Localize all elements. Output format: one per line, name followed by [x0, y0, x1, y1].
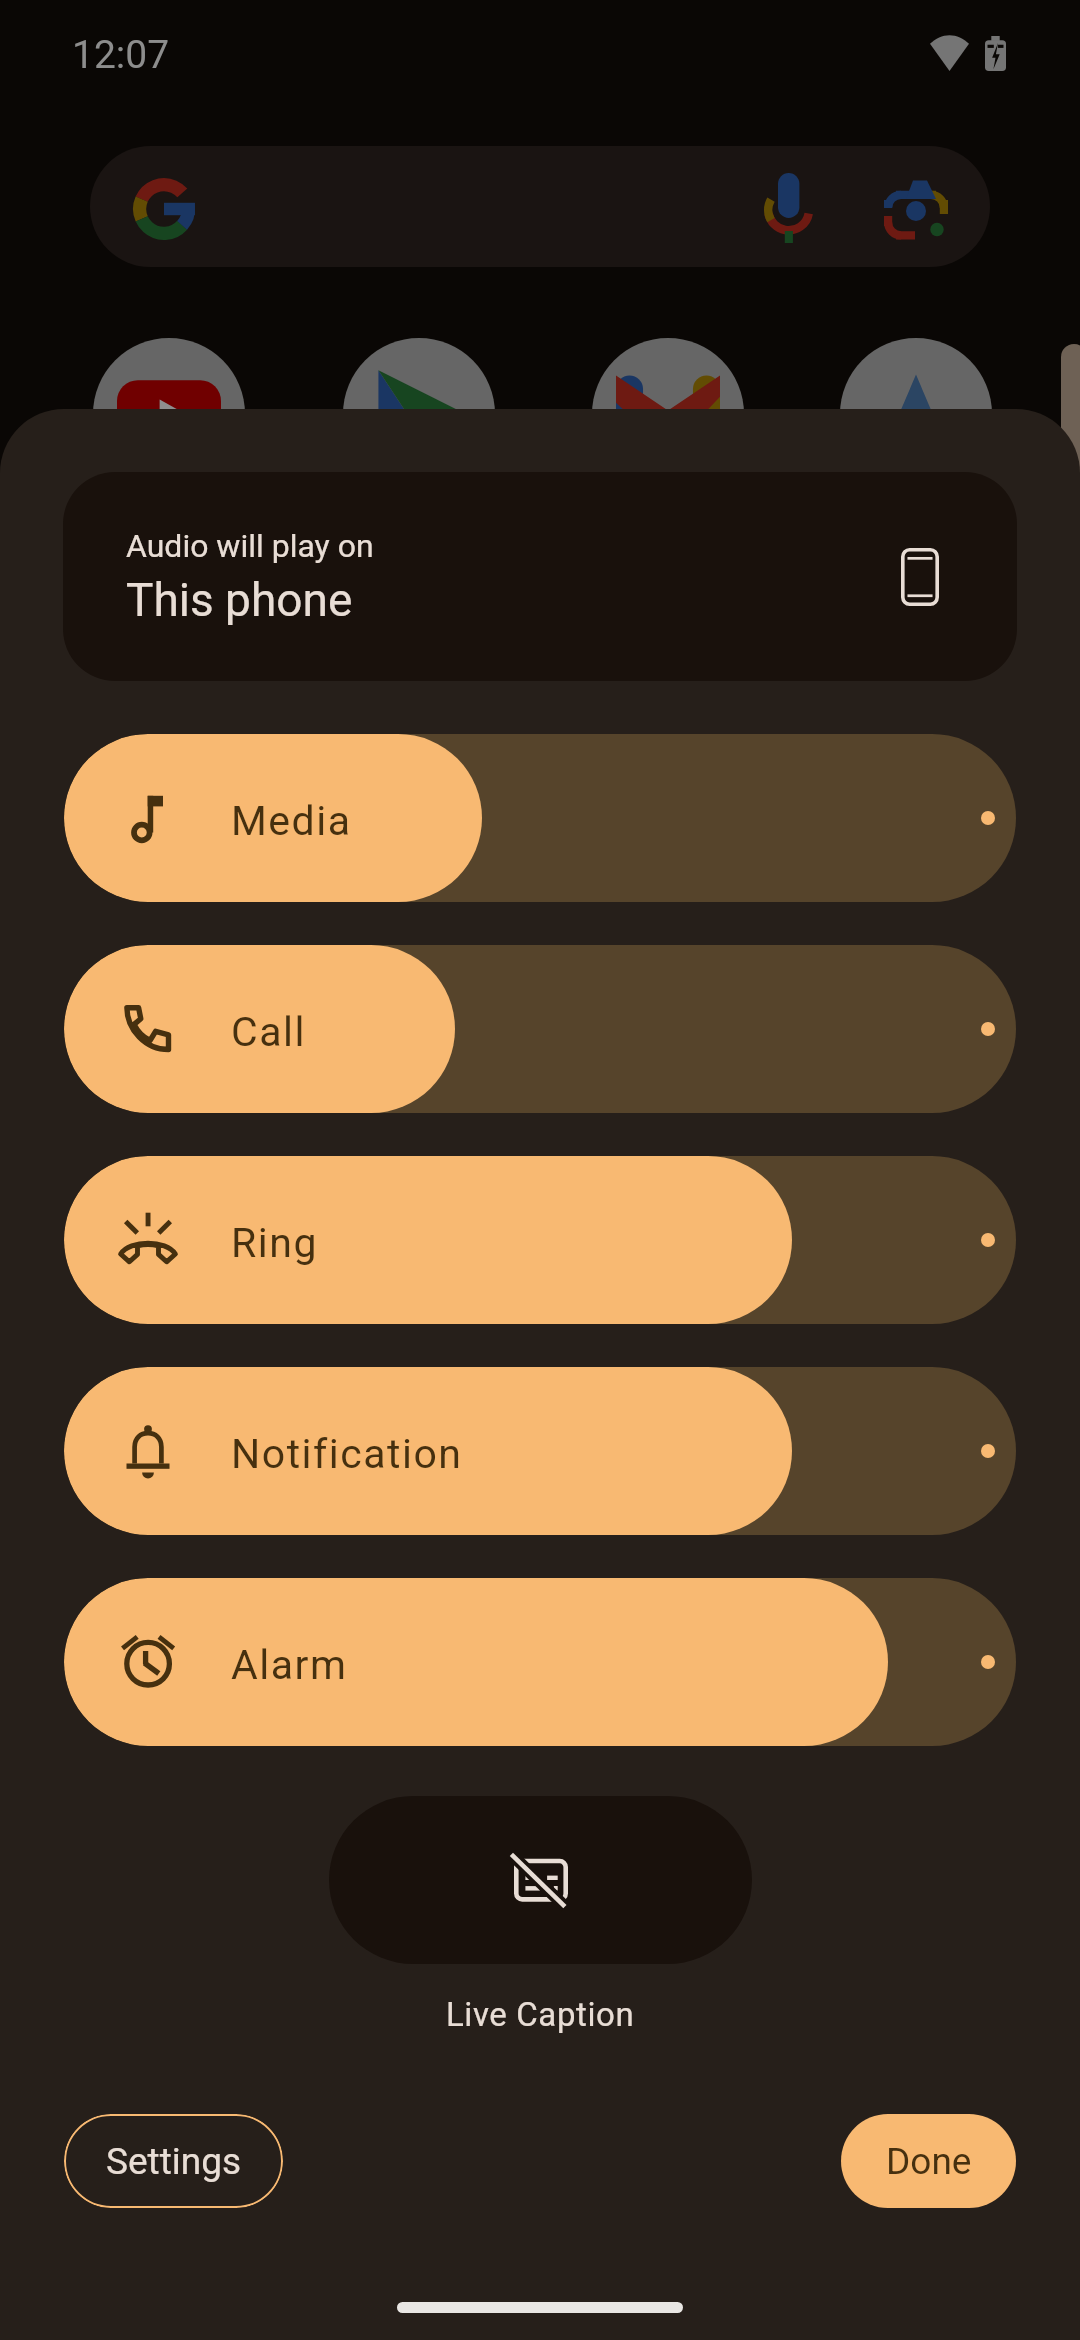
staticText: 12:07: [72, 32, 170, 78]
staticText: This phone: [126, 573, 353, 627]
staticText: Settings: [106, 2140, 242, 2183]
button[interactable]: Audio will play on: [63, 472, 1017, 681]
button[interactable]: Call: [64, 945, 1016, 1113]
staticText: Media: [231, 797, 352, 845]
staticText: Live Caption: [446, 1995, 635, 2034]
staticText: Notification: [231, 1430, 463, 1478]
button[interactable]: Settings: [64, 2114, 283, 2208]
button[interactable]: App: [840, 338, 992, 490]
staticText: Done: [886, 2140, 972, 2183]
button[interactable]: [90, 146, 990, 267]
staticText: Audio will play on: [126, 527, 374, 565]
button[interactable]: Live Caption: [329, 1796, 752, 1964]
staticText: Alarm: [231, 1641, 348, 1689]
button[interactable]: App: [93, 338, 245, 490]
button[interactable]: App: [592, 338, 744, 490]
button[interactable]: App: [343, 338, 495, 490]
staticText: Ring: [231, 1219, 318, 1267]
button[interactable]: Media: [64, 734, 1016, 902]
button[interactable]: Done: [841, 2114, 1016, 2208]
button[interactable]: Alarm: [64, 1578, 1016, 1746]
button[interactable]: Notification: [64, 1367, 1016, 1535]
staticText: Call: [231, 1008, 306, 1056]
other: This phone: [891, 548, 949, 606]
button[interactable]: Ring: [64, 1156, 1016, 1324]
